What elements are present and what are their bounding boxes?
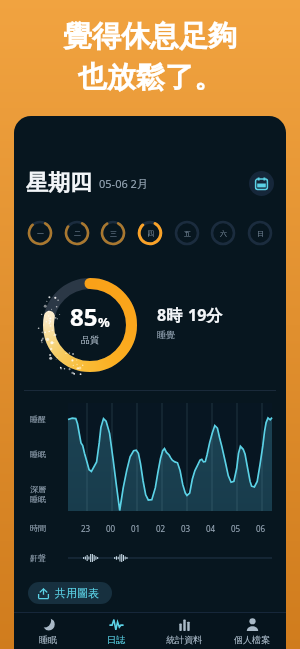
button[interactable]: 五: [174, 220, 200, 246]
button[interactable]: 共用圖表: [28, 582, 112, 604]
staticText: %: [98, 313, 110, 331]
staticText: 也放鬆了。: [78, 59, 223, 96]
staticText: 01: [131, 523, 141, 534]
button[interactable]: 統計資料: [150, 613, 218, 649]
staticText: 睡眠: [30, 449, 46, 459]
button[interactable]: 四: [137, 220, 163, 246]
button[interactable]: 二: [64, 220, 90, 246]
staticText: 個人檔案: [234, 634, 270, 645]
staticText: 二: [74, 229, 81, 238]
staticText: 03: [181, 523, 191, 534]
staticText: 05-06 2月: [99, 176, 148, 191]
staticText: 三: [110, 229, 117, 238]
staticText: 睡覺: [157, 329, 175, 340]
button[interactable]: 日: [247, 220, 273, 246]
staticText: 星期四: [26, 169, 92, 197]
staticText: 睡眠: [30, 494, 46, 504]
staticText: 日誌: [107, 634, 125, 645]
staticText: 8時: [157, 304, 183, 326]
staticText: 深層: [30, 484, 46, 494]
staticText: 四: [147, 229, 154, 238]
staticText: 04: [206, 523, 216, 534]
staticText: 鼾聲: [30, 553, 46, 563]
staticText: 品質: [81, 334, 99, 345]
button[interactable]: 個人檔案: [218, 613, 286, 649]
button[interactable]: 一: [27, 220, 53, 246]
staticText: 05: [231, 523, 241, 534]
staticText: 統計資料: [166, 634, 202, 645]
staticText: 23: [81, 523, 91, 534]
staticText: 19分: [188, 304, 223, 326]
staticText: 五: [184, 229, 191, 238]
staticText: 00: [106, 523, 116, 534]
staticText: 時間: [30, 523, 46, 533]
staticText: 覺得休息足夠: [63, 18, 237, 55]
button[interactable]: 三: [100, 220, 126, 246]
button[interactable]: 睡眠: [14, 613, 82, 649]
staticText: 睡眠: [39, 634, 57, 645]
staticText: 日: [257, 229, 264, 238]
staticText: 六: [220, 229, 227, 238]
staticText: 06: [256, 523, 266, 534]
staticText: 02: [156, 523, 166, 534]
staticText: 一: [37, 229, 44, 238]
button[interactable]: Open calendar: [249, 171, 274, 196]
button[interactable]: 日誌: [82, 613, 150, 649]
staticText: 睡醒: [30, 414, 46, 424]
staticText: 85: [70, 300, 98, 333]
button[interactable]: 六: [210, 220, 236, 246]
staticText: 共用圖表: [55, 586, 99, 600]
